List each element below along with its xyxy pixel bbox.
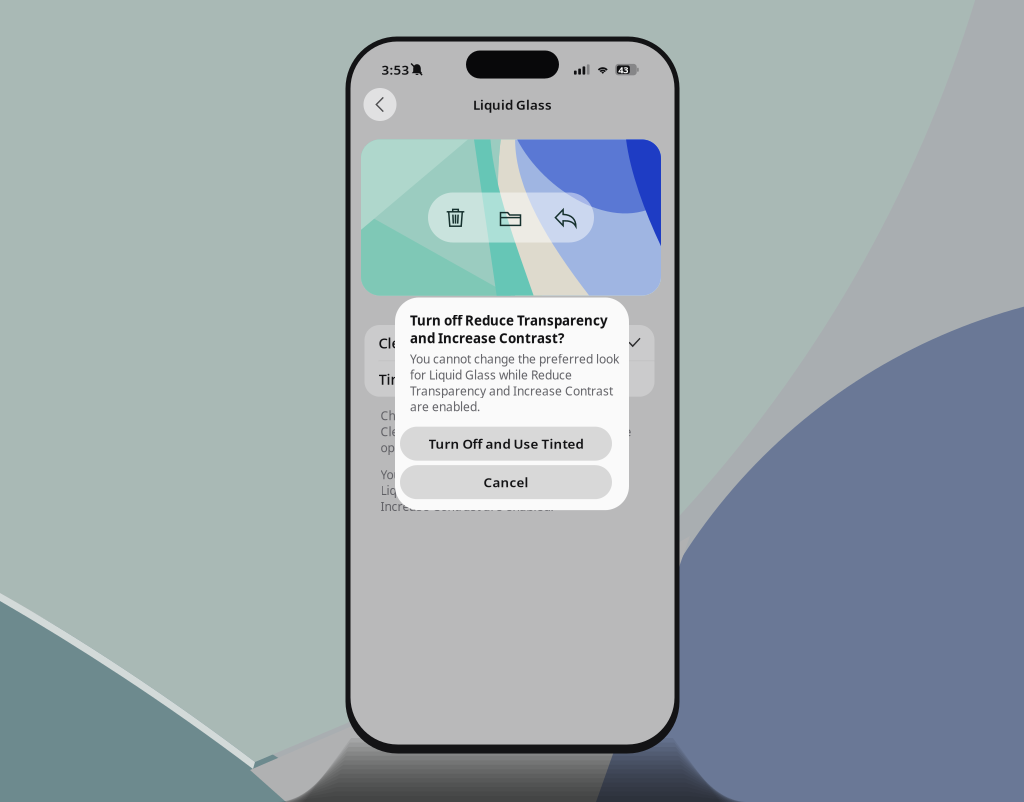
staticText: Liquid Glass bbox=[473, 96, 552, 113]
button[interactable]: Turn Off and Use Tinted bbox=[400, 427, 612, 461]
staticText: Turn off Reduce Transparency and Increas… bbox=[410, 311, 608, 347]
button[interactable]: Undo bbox=[538, 192, 594, 242]
staticText: You cannot change the preferred look for… bbox=[380, 466, 626, 514]
staticText: You cannot change the preferred look for… bbox=[410, 351, 619, 415]
button[interactable]: Clear bbox=[364, 325, 654, 360]
button[interactable]: Cancel bbox=[400, 465, 612, 499]
staticText: Cancel bbox=[483, 473, 528, 491]
staticText: Clear bbox=[378, 333, 413, 352]
staticText: Choose the preferred look for Liquid Gla… bbox=[380, 408, 631, 455]
button[interactable]: Delete bbox=[428, 192, 483, 242]
staticText: Tinted bbox=[378, 369, 422, 389]
staticText: 3:53 bbox=[381, 61, 409, 78]
button[interactable]: Tinted bbox=[364, 361, 654, 397]
staticText: 43 bbox=[618, 63, 628, 76]
button[interactable]: Move to folder bbox=[483, 192, 538, 242]
staticText: Turn Off and Use Tinted bbox=[428, 435, 583, 452]
button[interactable]: Back bbox=[363, 88, 396, 121]
